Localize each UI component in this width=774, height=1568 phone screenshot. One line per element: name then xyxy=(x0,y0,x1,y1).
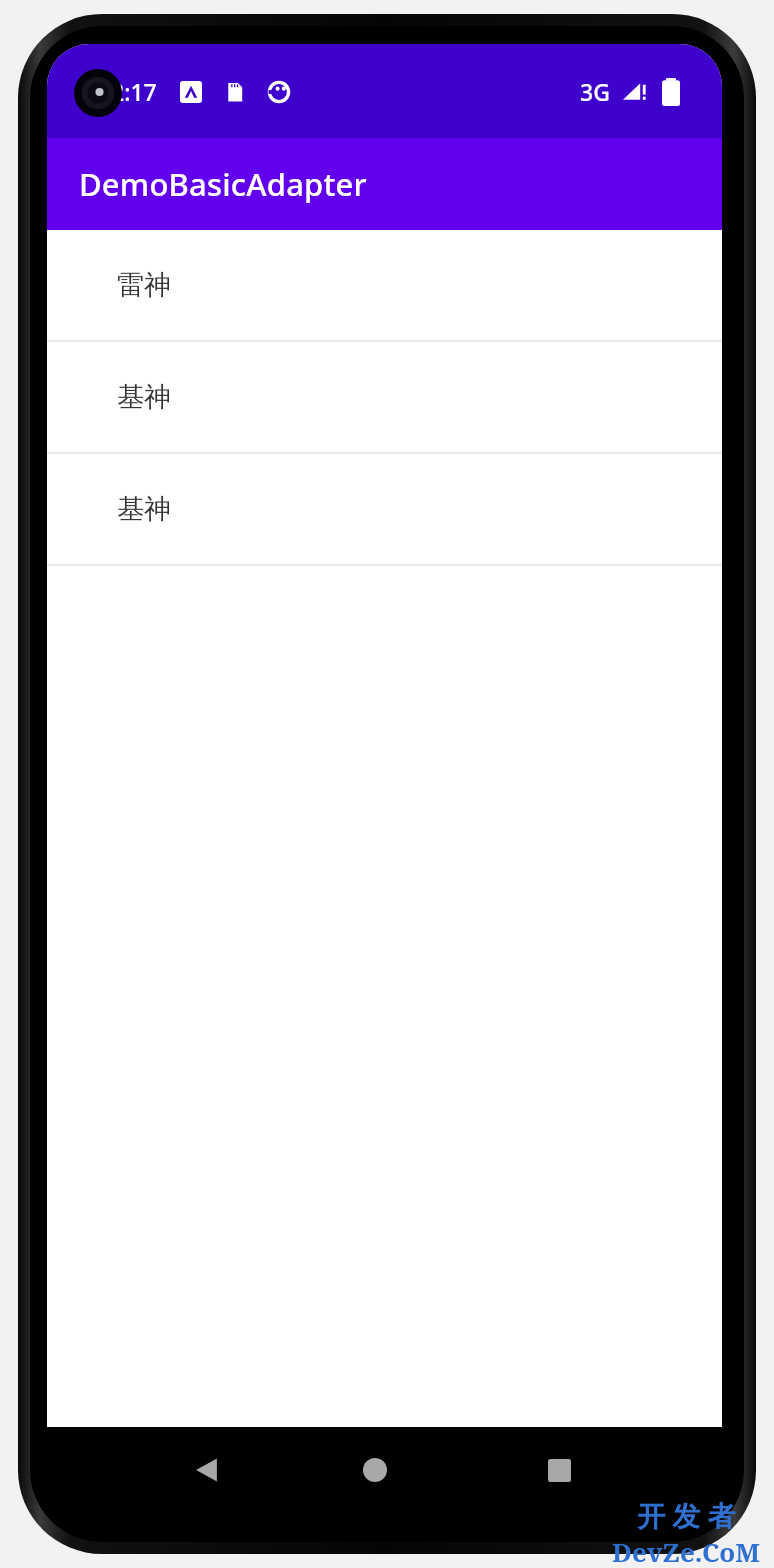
staticText: 开 发 者 xyxy=(637,1496,736,1534)
staticText: 基神 xyxy=(117,492,171,526)
button[interactable]: 基神 xyxy=(47,342,722,454)
staticText: 基神 xyxy=(117,380,171,414)
button[interactable]: 基神 xyxy=(47,454,722,566)
button[interactable]: Back xyxy=(175,1438,239,1502)
button[interactable]: Home xyxy=(343,1438,407,1502)
staticText: 3G xyxy=(580,76,610,107)
button[interactable]: Recent apps xyxy=(527,1438,591,1502)
staticText: DevZe.CoM xyxy=(612,1534,761,1568)
button[interactable]: 雷神 xyxy=(47,230,722,342)
staticText: 雷神 xyxy=(117,268,171,302)
staticText: 2:17 xyxy=(111,76,157,107)
staticText: DemoBasicAdapter xyxy=(79,163,367,205)
